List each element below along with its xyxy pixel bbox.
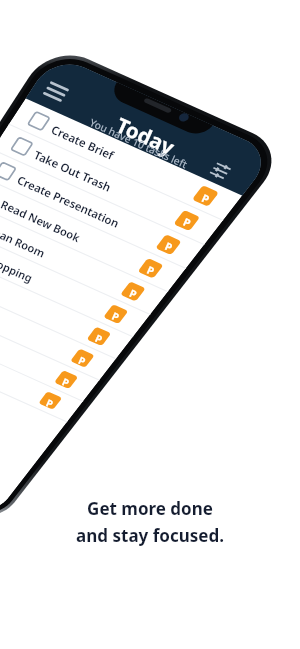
staticText: and stay focused. [76, 524, 224, 547]
button[interactable]: Task app preview [0, 0, 300, 649]
staticText: Get more done [87, 497, 213, 520]
